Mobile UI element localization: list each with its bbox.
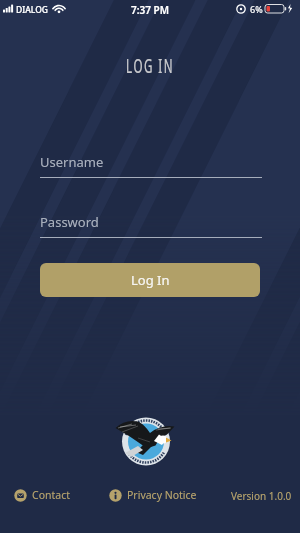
staticText: DIALOG [16, 4, 49, 16]
button[interactable]: Contact [14, 488, 70, 502]
button[interactable]: Log In [40, 263, 260, 297]
button[interactable] [98, 408, 198, 478]
staticText: 7:37 PM [0, 3, 300, 17]
staticText: LOG IN [63, 52, 237, 79]
staticText: 6% [250, 3, 263, 15]
staticText: Contact [32, 488, 70, 502]
staticText: Log In [131, 271, 170, 289]
staticText: Password [40, 213, 99, 231]
staticText: Username [40, 153, 104, 171]
staticText: Privacy Notice [127, 488, 197, 502]
button[interactable]: Privacy Notice [109, 488, 197, 502]
button[interactable]: Password [40, 210, 262, 240]
staticText: Version 1.0.0 [231, 489, 292, 503]
button[interactable]: Username [40, 150, 262, 180]
